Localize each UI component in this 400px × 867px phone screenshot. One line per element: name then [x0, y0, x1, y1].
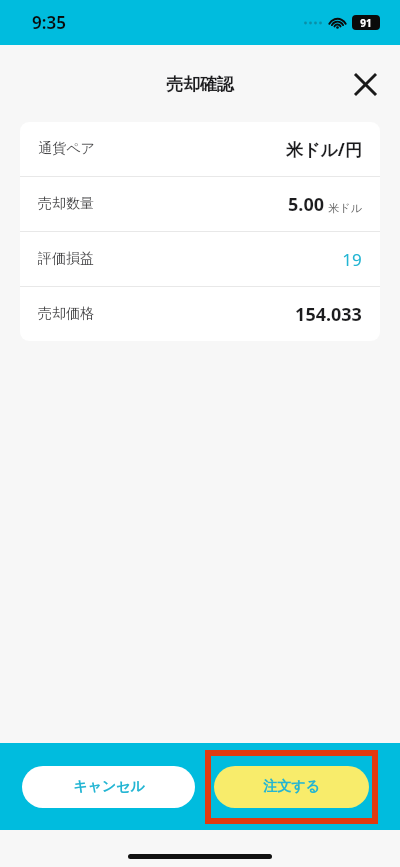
button[interactable]: 通貨ペア [20, 122, 380, 176]
staticText: 米ドル/円 [286, 138, 362, 161]
button[interactable]: 売却数量 [20, 177, 380, 231]
staticText: 91 [360, 16, 372, 30]
button[interactable]: 評価損益 [20, 232, 380, 286]
staticText: 5.00 [288, 192, 324, 217]
staticText: キャンセル [73, 778, 145, 796]
staticText: 評価損益 [38, 250, 94, 268]
staticText: 売却価格 [38, 305, 94, 323]
staticText: 154.033 [295, 302, 362, 327]
staticText: 9:35 [32, 11, 66, 34]
button[interactable]: 閉じる [348, 67, 382, 101]
staticText: 売却数量 [38, 195, 94, 213]
button[interactable]: 売却価格 [20, 287, 380, 341]
staticText: 注文する [263, 778, 320, 796]
button[interactable]: キャンセル [22, 766, 195, 808]
staticText: 19 [342, 248, 362, 271]
staticText: 通貨ペア [38, 140, 95, 158]
button[interactable]: 注文する [214, 766, 369, 808]
staticText: 売却確認 [166, 74, 234, 95]
staticText: 米ドル [328, 201, 362, 215]
